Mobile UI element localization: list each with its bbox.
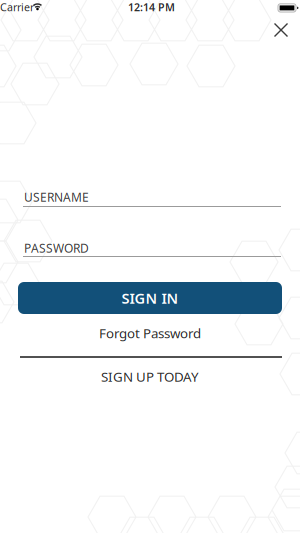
staticText: SIGN IN <box>121 288 178 308</box>
button[interactable]: SIGN UP TODAY <box>101 368 199 385</box>
button[interactable]: USERNAME <box>0 180 300 224</box>
staticText: Forgot Password <box>99 324 201 342</box>
staticText: 12:14 PM <box>128 0 175 14</box>
button[interactable]: SIGN IN <box>18 282 282 314</box>
button[interactable]: PASSWORD <box>0 230 300 274</box>
button[interactable]: Close <box>266 15 296 45</box>
staticText: Carrier <box>0 0 34 14</box>
staticText: SIGN UP TODAY <box>101 368 199 385</box>
staticText: USERNAME <box>24 189 89 205</box>
staticText: PASSWORD <box>24 240 89 256</box>
button[interactable]: Forgot Password <box>99 324 201 342</box>
